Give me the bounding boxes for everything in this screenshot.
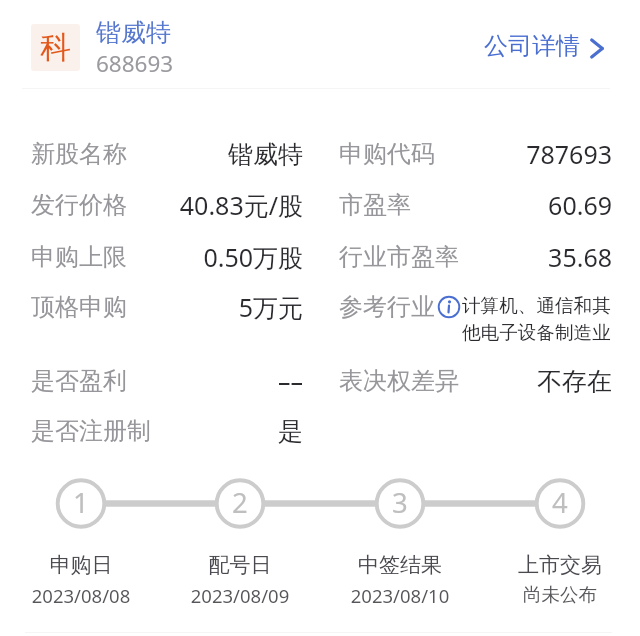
button[interactable]: 4 (534, 476, 586, 528)
staticText: 688693 (96, 48, 174, 79)
staticText: 1 (73, 484, 89, 521)
button[interactable]: 1 (55, 476, 107, 528)
staticText: 0.50万股 (103, 240, 303, 274)
staticText: 2023/08/10 (310, 583, 490, 608)
staticText: –– (103, 364, 303, 398)
button[interactable]: 3 (374, 476, 426, 528)
staticText: 申购代码 (339, 139, 435, 169)
staticText: 40.83元/股 (103, 188, 303, 222)
staticText: 不存在 (392, 366, 612, 397)
button[interactable]: 公司详情 (484, 31, 605, 61)
staticText: 表决权差异 (339, 366, 459, 396)
staticText: 2023/08/09 (150, 583, 330, 608)
staticText: 计算机、通信和其 他电子设备制造业 (462, 294, 640, 344)
button[interactable]: 配号日 (150, 552, 330, 608)
staticText: 顶格申购 (31, 292, 127, 322)
staticText: 行业市盈率 (339, 242, 459, 272)
button[interactable]: Industry info (436, 294, 462, 320)
staticText: 2 (232, 484, 248, 521)
staticText: 配号日 (150, 552, 330, 578)
staticText: 35.68 (392, 240, 612, 274)
button[interactable]: 中签结果 (310, 552, 490, 608)
staticText: 中签结果 (310, 552, 490, 578)
button[interactable]: 申购日 (0, 552, 171, 608)
staticText: 2023/08/08 (0, 583, 171, 608)
staticText: 5万元 (103, 290, 303, 324)
staticText: 是否盈利 (31, 366, 127, 396)
staticText: 参考行业 (339, 292, 435, 322)
button[interactable]: 锴威特 (96, 17, 174, 48)
staticText: 60.69 (392, 188, 612, 222)
staticText: 申购日 (0, 552, 171, 578)
staticText: 是 (103, 416, 303, 447)
staticText: 是否注册制 (31, 416, 151, 446)
staticText: 公司详情 (484, 31, 580, 61)
staticText: 发行价格 (31, 190, 127, 220)
staticText: 3 (392, 484, 408, 521)
staticText: 申购上限 (31, 242, 127, 272)
staticText: 新股名称 (31, 139, 127, 169)
button[interactable]: 上市交易 (470, 552, 640, 606)
staticText: 科 (40, 28, 71, 67)
staticText: 787693 (392, 137, 612, 171)
staticText: 锴威特 (103, 139, 303, 170)
staticText: 4 (552, 484, 568, 521)
staticText: 市盈率 (339, 190, 411, 220)
button[interactable]: 2 (214, 476, 266, 528)
staticText: 锴威特 (96, 17, 171, 48)
staticText: 尚未公布 (470, 583, 640, 606)
staticText: 上市交易 (470, 552, 640, 578)
